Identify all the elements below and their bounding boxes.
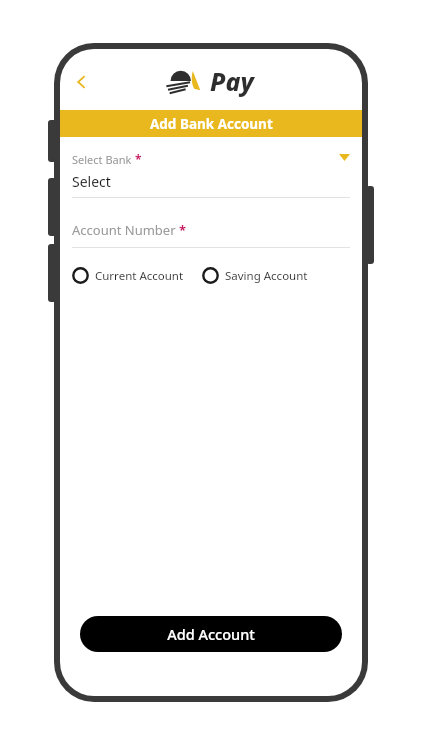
button[interactable]: Add Account xyxy=(80,616,342,652)
staticText: Add Account xyxy=(167,624,255,644)
button[interactable]: Select Bank xyxy=(72,151,350,198)
staticText: Pay xyxy=(210,64,254,98)
staticText: Select Bank xyxy=(72,152,135,167)
staticText: Current Account xyxy=(95,268,184,284)
staticText: * xyxy=(179,221,187,239)
staticText: Add Bank Account xyxy=(150,115,273,133)
button[interactable]: Current Account xyxy=(72,267,184,284)
staticText: * xyxy=(135,151,142,167)
staticText: Saving Account xyxy=(225,268,308,284)
button[interactable]: Back xyxy=(64,65,98,99)
button[interactable]: Account Number xyxy=(72,221,350,248)
staticText: Select xyxy=(72,172,111,191)
staticText: Account Number xyxy=(72,221,179,239)
button[interactable]: Saving Account xyxy=(202,267,308,284)
